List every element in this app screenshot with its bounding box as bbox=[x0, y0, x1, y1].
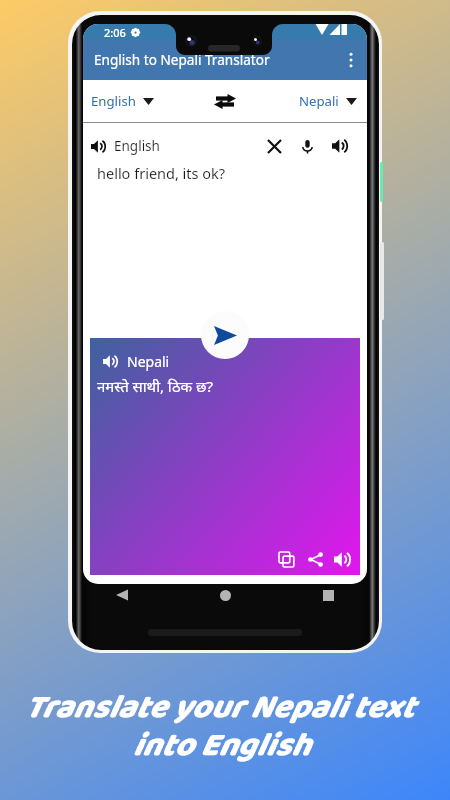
button[interactable]: Nepali bbox=[246, 92, 367, 110]
button[interactable]: English bbox=[83, 92, 204, 110]
staticText: English to Nepali Translator bbox=[94, 50, 270, 69]
button[interactable]: Share translation bbox=[302, 546, 328, 572]
button[interactable]: Recent apps bbox=[313, 580, 343, 610]
staticText: into English bbox=[132, 719, 310, 772]
button[interactable]: Home bbox=[210, 580, 240, 610]
staticText: 2:06 bbox=[104, 25, 126, 40]
staticText: English bbox=[91, 92, 136, 110]
button[interactable]: Swap languages bbox=[204, 80, 246, 122]
staticText: Nepali bbox=[299, 92, 339, 110]
staticText: Nepali bbox=[127, 352, 170, 371]
staticText: नमस्ते साथी, ठिक छ? bbox=[97, 376, 214, 396]
button[interactable]: Copy translation bbox=[273, 546, 299, 572]
button[interactable]: More options bbox=[335, 44, 367, 76]
staticText: English bbox=[114, 137, 160, 155]
staticText: hello friend, its ok? bbox=[97, 163, 226, 183]
staticText: Translate your Nepali text bbox=[24, 681, 414, 734]
button[interactable]: Speak translation bbox=[329, 546, 355, 572]
button[interactable]: Translate bbox=[201, 311, 249, 359]
button[interactable]: Back bbox=[107, 580, 137, 610]
button[interactable]: Voice input bbox=[293, 132, 321, 160]
button[interactable]: Speak source text bbox=[326, 132, 354, 160]
button[interactable]: Clear text bbox=[260, 132, 288, 160]
